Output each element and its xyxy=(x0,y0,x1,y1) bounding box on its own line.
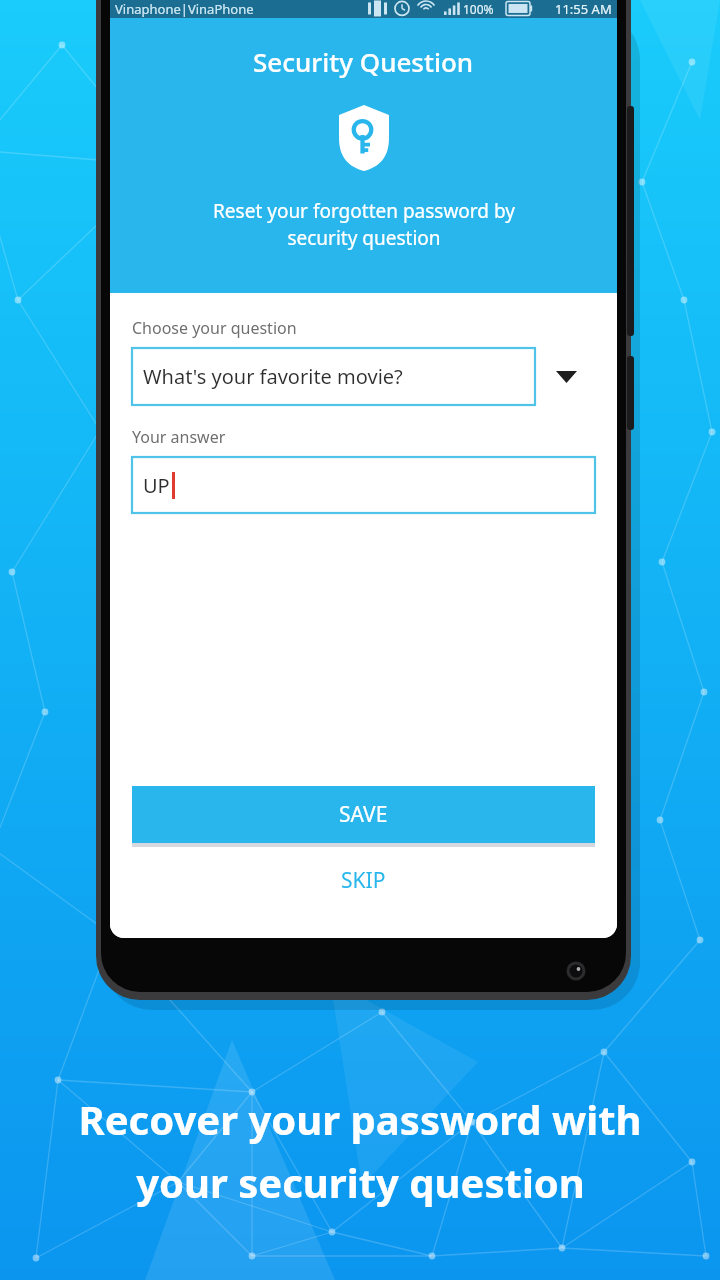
staticText: 100% xyxy=(463,1,494,17)
other: Open question list xyxy=(551,362,581,392)
staticText: Recover your password with xyxy=(78,1092,642,1146)
staticText: Vinaphone|VinaPhone xyxy=(115,0,254,18)
staticText: Choose your question xyxy=(132,317,297,339)
staticText: UP xyxy=(143,472,170,499)
staticText: your security question xyxy=(136,1155,585,1209)
staticText: 11:55 AM xyxy=(555,0,612,18)
button[interactable]: SAVE xyxy=(132,786,595,843)
staticText: Reset your forgotten password by securit… xyxy=(213,198,515,251)
staticText: SAVE xyxy=(339,800,388,829)
staticText: Security Question xyxy=(253,44,474,79)
button[interactable]: What's your favorite movie? xyxy=(132,348,595,405)
button[interactable]: SKIP xyxy=(132,860,595,900)
staticText: What's your favorite movie? xyxy=(143,363,403,390)
button[interactable]: UP xyxy=(132,457,595,513)
staticText: Your answer xyxy=(132,426,226,448)
staticText: SKIP xyxy=(341,866,386,895)
